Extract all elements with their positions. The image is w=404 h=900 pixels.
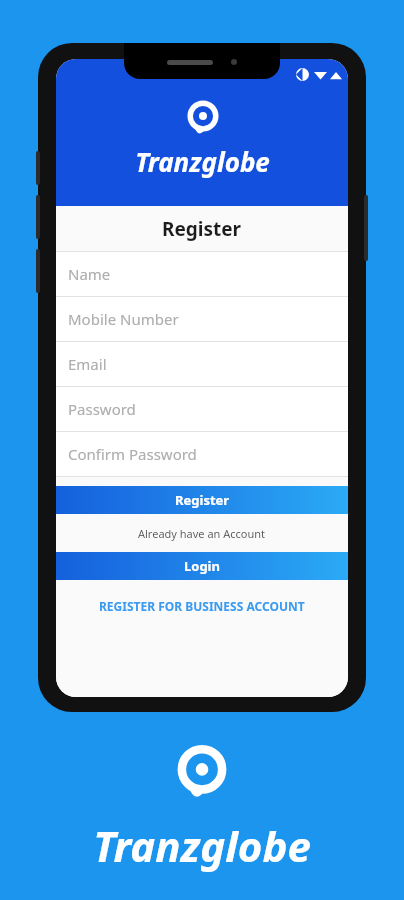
staticText: Tranzglobe: [93, 817, 311, 874]
staticText: Password: [68, 399, 136, 419]
staticText: REGISTER FOR BUSINESS ACCOUNT: [99, 598, 305, 614]
button[interactable]: Name: [56, 252, 348, 296]
staticText: Register: [175, 491, 230, 509]
staticText: Tranzglobe: [135, 144, 270, 179]
button[interactable]: Email: [56, 342, 348, 386]
other: Tranzglobe logo: [182, 98, 224, 140]
staticText: Register: [162, 216, 242, 242]
staticText: Name: [68, 264, 111, 284]
button[interactable]: REGISTER FOR BUSINESS ACCOUNT: [56, 580, 348, 632]
button[interactable]: Register: [56, 486, 348, 514]
staticText: Login: [184, 557, 220, 575]
staticText: Mobile Number: [68, 309, 179, 329]
button[interactable]: Confirm Password: [56, 432, 348, 476]
button[interactable]: Login: [56, 552, 348, 580]
button[interactable]: Mobile Number: [56, 297, 348, 341]
other: Tranzglobe logo: [169, 741, 235, 807]
staticText: Email: [68, 354, 107, 374]
button[interactable]: Password: [56, 387, 348, 431]
button[interactable]: Already have an Account: [56, 514, 348, 552]
staticText: Confirm Password: [68, 444, 197, 464]
staticText: Already have an Account: [138, 526, 266, 541]
